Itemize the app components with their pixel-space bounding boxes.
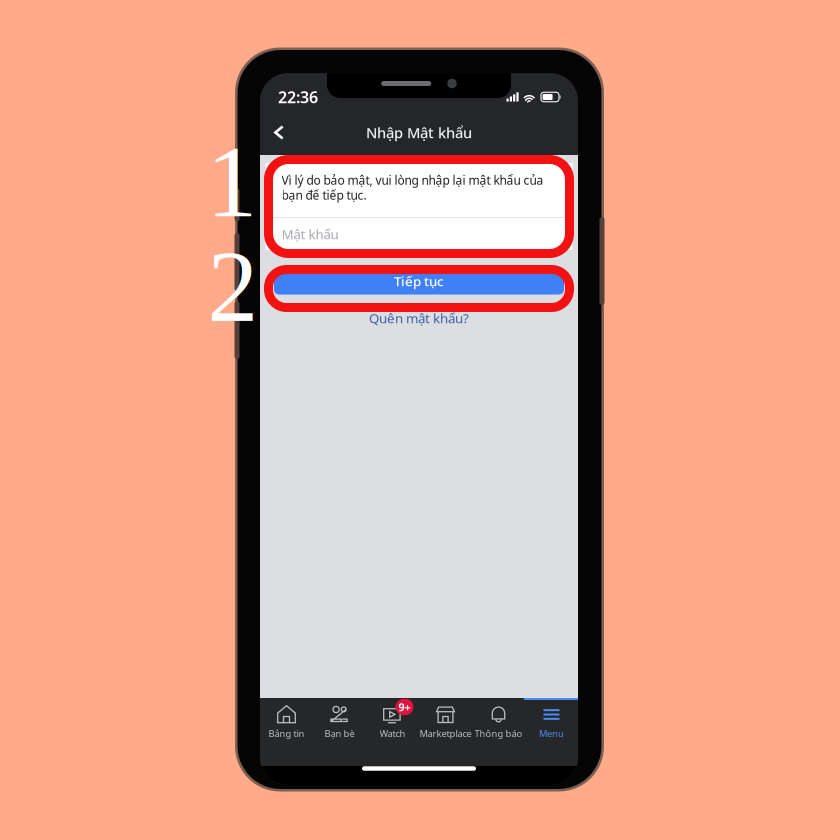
button[interactable]: Thông báo xyxy=(472,704,525,738)
staticText: Nhập Mật khẩu xyxy=(366,123,472,142)
button[interactable]: Bạn bè xyxy=(313,704,366,738)
staticText: 1 xyxy=(206,126,257,238)
button[interactable]: Back xyxy=(264,116,294,148)
staticText: Menu xyxy=(539,727,564,740)
staticText: 9+ xyxy=(398,700,410,714)
button[interactable]: Quên mật khẩu? xyxy=(339,309,499,327)
staticText: 22:36 xyxy=(278,86,318,108)
staticText: Tiếp tục xyxy=(394,272,444,290)
staticText: Bạn bè xyxy=(324,727,354,740)
button[interactable]: Marketplace xyxy=(419,704,472,738)
staticText: Marketplace xyxy=(419,727,471,740)
button[interactable]: Tiếp tục xyxy=(274,267,564,294)
staticText: Bảng tin xyxy=(268,727,304,740)
button[interactable]: Bảng tin xyxy=(260,704,313,738)
staticText: Quên mật khẩu? xyxy=(369,309,469,327)
staticText: bạn để tiếp tục. xyxy=(281,187,366,203)
staticText: Thông báo xyxy=(474,727,522,740)
button[interactable]: Menu xyxy=(525,704,578,738)
staticText: Mật khẩu xyxy=(281,225,338,243)
button[interactable]: 9+ xyxy=(366,704,419,738)
staticText: Vì lý do bảo mật, vui lòng nhập lại mật … xyxy=(281,172,543,188)
staticText: 2 xyxy=(207,231,258,343)
staticText: Watch xyxy=(379,727,405,740)
